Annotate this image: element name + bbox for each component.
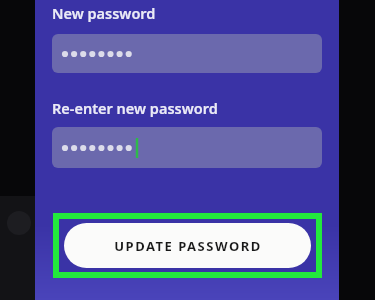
button[interactable] — [52, 127, 322, 168]
button[interactable] — [52, 34, 322, 73]
staticText: UPDATE PASSWORD — [114, 237, 262, 255]
staticText: New password — [52, 3, 156, 23]
button[interactable]: Update password — [64, 223, 311, 268]
staticText: Re-enter new password — [52, 98, 218, 118]
